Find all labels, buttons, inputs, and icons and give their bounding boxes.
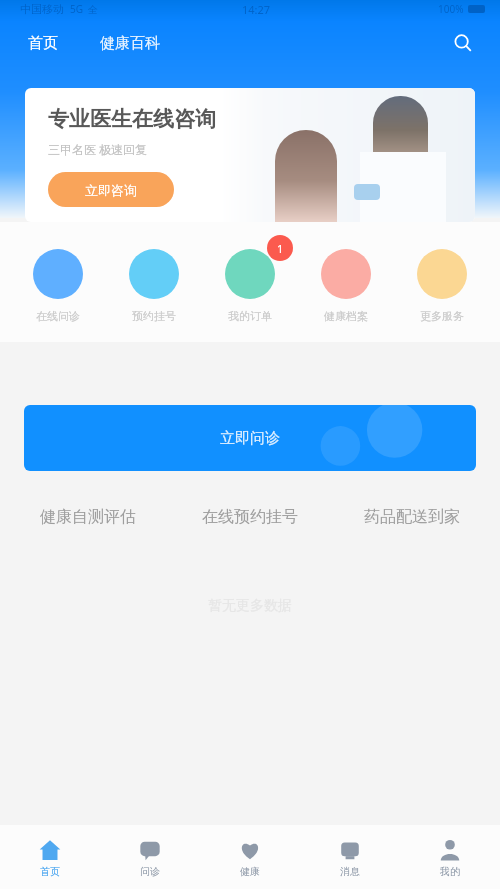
button[interactable]: 1 (202, 249, 298, 323)
button[interactable]: 健康自测评估 (38, 499, 138, 535)
button[interactable]: Search (448, 28, 478, 58)
button[interactable]: 健康 (200, 831, 300, 884)
staticText: 我的 (440, 865, 460, 878)
staticText: 首页 (40, 865, 60, 878)
staticText: 1 (277, 241, 284, 256)
staticText: 问诊 (140, 865, 160, 878)
staticText: 药品配送到家 (364, 507, 460, 527)
staticText: 立即问诊 (220, 429, 280, 448)
button[interactable]: 问诊 (100, 831, 200, 884)
button[interactable]: 立即咨询 (48, 172, 174, 207)
staticText: 三甲名医 极速回复 (48, 141, 148, 157)
staticText: 立即咨询 (85, 182, 137, 198)
staticText: 更多服务 (420, 309, 464, 323)
button[interactable]: 在线问诊 (10, 249, 106, 323)
staticText: 100% (438, 2, 464, 16)
staticText: 健康自测评估 (40, 507, 136, 527)
staticText: 健康百科 (100, 34, 160, 53)
staticText: 专业医生在线咨询 (48, 106, 216, 132)
button[interactable]: 更多服务 (394, 249, 490, 323)
staticText: 在线预约挂号 (202, 507, 298, 527)
button[interactable]: 首页 (26, 28, 60, 59)
staticText: 14:27 (242, 2, 271, 17)
staticText: 消息 (340, 865, 360, 878)
staticText: 在线问诊 (36, 309, 80, 323)
staticText: 全 (88, 3, 98, 16)
button[interactable]: 专业医生在线咨询 (25, 88, 475, 222)
staticText: 中国移动 (20, 2, 64, 16)
button[interactable]: 我的 (400, 831, 500, 884)
button[interactable]: 消息 (300, 831, 400, 884)
staticText: 预约挂号 (132, 309, 176, 323)
button[interactable]: 健康百科 (98, 28, 162, 59)
button[interactable]: 首页 (0, 831, 100, 884)
button[interactable]: 健康档案 (298, 249, 394, 323)
button[interactable]: 在线预约挂号 (200, 499, 300, 535)
staticText: 5G (70, 2, 83, 16)
button[interactable]: 预约挂号 (106, 249, 202, 323)
staticText: 我的订单 (228, 309, 272, 323)
staticText: 首页 (28, 34, 58, 53)
staticText: 健康 (240, 865, 260, 878)
button[interactable]: 药品配送到家 (362, 499, 462, 535)
button[interactable]: 立即问诊 (24, 405, 476, 471)
staticText: 健康档案 (324, 309, 368, 323)
